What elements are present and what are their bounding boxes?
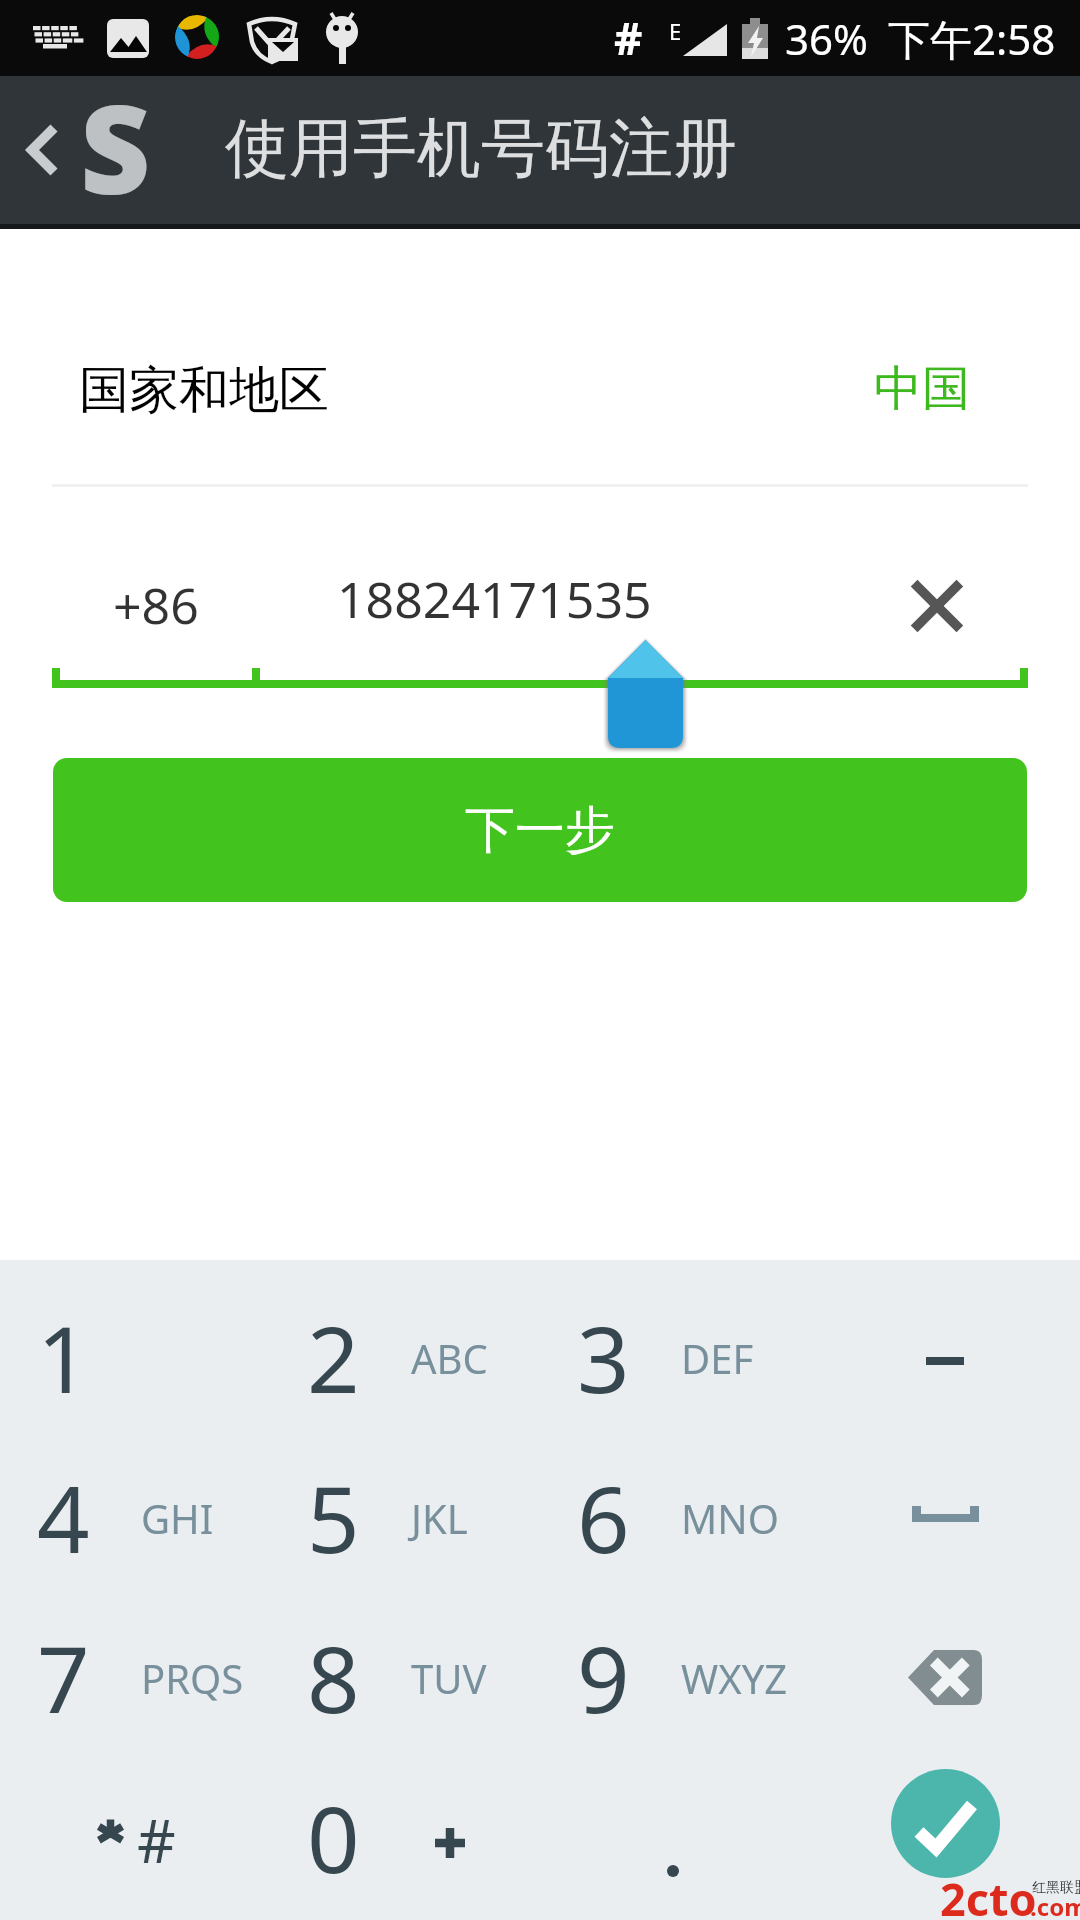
- other: Backspace: [908, 1650, 982, 1705]
- button[interactable]: 2: [270, 1278, 540, 1438]
- button[interactable]: 1: [0, 1278, 270, 1438]
- button[interactable]: *: [0, 1758, 270, 1918]
- button[interactable]: Clear: [867, 536, 1007, 676]
- staticText: 36%: [785, 10, 868, 67]
- staticText: 红黑联盟: [1032, 1879, 1080, 1897]
- staticText: #: [614, 8, 643, 68]
- staticText: 8: [307, 1615, 360, 1740]
- staticText: 5: [307, 1455, 360, 1580]
- staticText: 18824171535: [337, 565, 652, 633]
- staticText: +86: [113, 571, 199, 639]
- button[interactable]: 0: [270, 1758, 540, 1918]
- staticText: 6: [577, 1455, 630, 1580]
- button[interactable]: Backspace: [810, 1598, 1080, 1758]
- button[interactable]: Dash: [810, 1278, 1080, 1438]
- button[interactable]: 9: [540, 1598, 810, 1758]
- staticText: 2cto: [940, 1868, 1037, 1920]
- staticText: #: [137, 1799, 176, 1881]
- staticText: 下午2:58: [888, 10, 1056, 67]
- button[interactable]: 6: [540, 1438, 810, 1598]
- staticText: 中国: [874, 359, 970, 419]
- staticText: GHI: [141, 1491, 214, 1545]
- button[interactable]: Period: [540, 1758, 810, 1918]
- button[interactable]: 4: [0, 1438, 270, 1598]
- button[interactable]: 7: [0, 1598, 270, 1758]
- button[interactable]: 5: [270, 1438, 540, 1598]
- button[interactable]: Back: [0, 76, 200, 228]
- button[interactable]: 3: [540, 1278, 810, 1438]
- staticText: 国家和地区: [79, 359, 329, 422]
- button[interactable]: 8: [270, 1598, 540, 1758]
- staticText: 4: [37, 1455, 90, 1580]
- button[interactable]: Confirm: [891, 1769, 1000, 1878]
- button[interactable]: Space: [810, 1438, 1080, 1598]
- staticText: PRQS: [141, 1651, 244, 1705]
- staticText: 使用手机号码注册: [225, 108, 737, 189]
- staticText: 0: [307, 1775, 360, 1900]
- staticText: 7: [37, 1615, 90, 1740]
- staticText: 1: [37, 1295, 90, 1420]
- staticText: TUV: [411, 1651, 487, 1705]
- staticText: MNO: [681, 1491, 779, 1545]
- staticText: ABC: [411, 1331, 488, 1385]
- staticText: .com: [1030, 1890, 1080, 1920]
- button[interactable]: Confirm: [810, 1758, 1080, 1918]
- staticText: 下一步: [465, 799, 615, 862]
- button[interactable]: 下一步: [53, 758, 1027, 902]
- staticText: JKL: [411, 1491, 468, 1545]
- staticText: 2: [307, 1295, 360, 1420]
- staticText: WXYZ: [681, 1651, 788, 1705]
- staticText: DEF: [681, 1331, 754, 1385]
- staticText: 3: [577, 1295, 630, 1420]
- staticText: E: [669, 16, 682, 46]
- button[interactable]: 国家和地区: [0, 318, 1080, 458]
- staticText: S: [80, 64, 151, 216]
- staticText: 9: [577, 1615, 630, 1740]
